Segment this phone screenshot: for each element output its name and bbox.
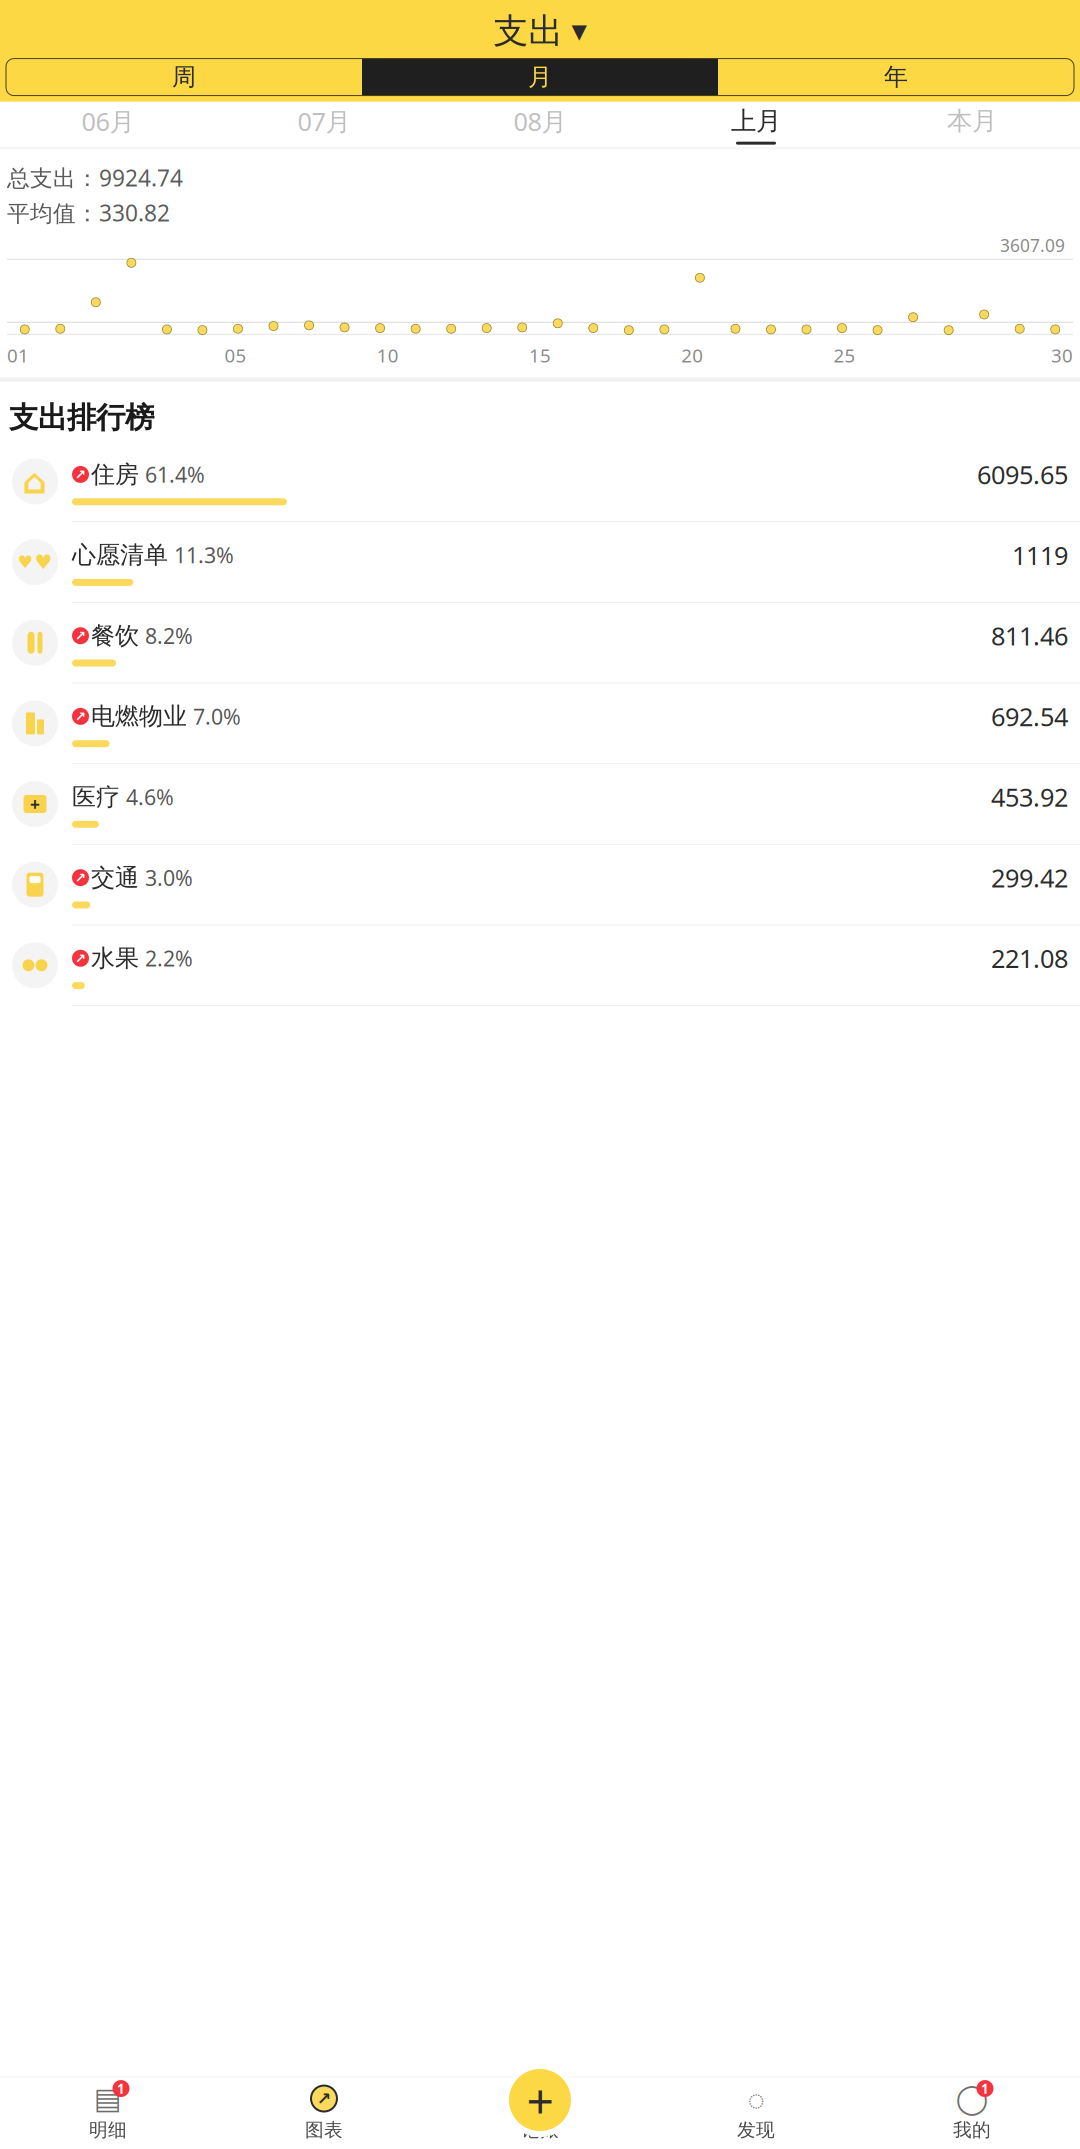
staticText: ↗ xyxy=(75,467,86,482)
button[interactable]: ▤ xyxy=(0,2077,216,2149)
button[interactable]: ↗ xyxy=(0,603,1080,683)
staticText: 周 xyxy=(172,62,196,92)
staticText xyxy=(536,2079,544,2118)
staticText: 08月 xyxy=(513,104,566,138)
button[interactable]: 上月 xyxy=(648,102,864,148)
button[interactable]: ↗ xyxy=(0,683,1080,764)
staticText: + xyxy=(526,2068,553,2132)
button[interactable]: 记账 xyxy=(503,2063,577,2149)
staticText: ▼ xyxy=(571,20,586,43)
staticText: 3.0% xyxy=(139,863,193,892)
staticText: 692.54 xyxy=(991,699,1068,733)
staticText: 月 xyxy=(528,62,552,92)
staticText: + xyxy=(30,792,40,815)
staticText: 2.2% xyxy=(139,944,193,972)
button[interactable]: + xyxy=(0,764,1080,845)
staticText: 支出 xyxy=(493,10,563,53)
button[interactable]: ⌂ xyxy=(0,442,1080,522)
staticText: 1 xyxy=(117,2080,125,2097)
staticText: 221.08 xyxy=(991,941,1068,975)
staticText: 明细 xyxy=(89,2118,127,2141)
staticText: 20 xyxy=(681,343,703,368)
button[interactable]: 年 xyxy=(718,59,1074,96)
staticText: 记账 xyxy=(521,2118,559,2141)
button[interactable]: 06月 xyxy=(0,102,216,148)
staticText: ◌ xyxy=(747,2079,764,2118)
staticText: ↗ xyxy=(75,709,86,724)
staticText: ⌂ xyxy=(22,462,47,501)
staticText: 10 xyxy=(377,343,399,368)
staticText: ↗ xyxy=(75,951,86,966)
button[interactable]: 08月 xyxy=(432,102,648,148)
button[interactable]: ◌ xyxy=(648,2077,864,2149)
staticText: 7.0% xyxy=(187,702,241,730)
staticText: 交通 xyxy=(91,863,139,892)
staticText: 医疗 xyxy=(72,782,120,812)
staticText: 餐饮 xyxy=(91,621,139,650)
staticText: 299.42 xyxy=(991,861,1068,894)
staticText: 8.2% xyxy=(139,622,193,650)
button[interactable]: ↗ xyxy=(0,845,1080,925)
staticText: 3607.09 xyxy=(1000,234,1065,257)
staticText: 06月 xyxy=(81,104,134,138)
staticText: ♥ xyxy=(17,552,33,572)
staticText: 1 xyxy=(981,2080,989,2097)
button[interactable]: 支出 xyxy=(493,0,586,59)
staticText: 07月 xyxy=(297,104,350,138)
button[interactable]: 月 xyxy=(362,59,718,96)
staticText: ◯ xyxy=(955,2082,988,2115)
staticText: 11.3% xyxy=(168,541,234,569)
button[interactable]: ♥ xyxy=(0,522,1080,603)
staticText: ♥ xyxy=(34,551,52,573)
staticText: 发现 xyxy=(737,2118,775,2141)
staticText: 我的 xyxy=(953,2118,991,2141)
staticText: ↗ xyxy=(75,628,86,643)
staticText: 心愿清单 xyxy=(72,540,168,570)
button[interactable]: ↗ xyxy=(216,2077,432,2149)
staticText: 25 xyxy=(834,343,856,368)
staticText: 水果 xyxy=(91,944,139,973)
staticText: 上月 xyxy=(731,105,781,137)
button[interactable]: 本月 xyxy=(864,102,1080,148)
staticText: 811.46 xyxy=(991,619,1068,652)
button[interactable]: 周 xyxy=(6,59,362,96)
staticText: 电燃物业 xyxy=(91,702,187,731)
button[interactable]: ◯ xyxy=(864,2077,1080,2149)
staticText: 61.4% xyxy=(139,460,205,489)
staticText: 453.92 xyxy=(991,780,1068,814)
staticText: 6095.65 xyxy=(977,458,1068,491)
staticText: 总支出：9924.74 xyxy=(7,163,183,193)
staticText: 01 xyxy=(7,343,29,368)
button[interactable]: ↗ xyxy=(0,925,1080,1006)
staticText: ↗ xyxy=(316,2089,331,2108)
staticText: ▤ xyxy=(94,2082,122,2115)
staticText: 05 xyxy=(224,343,246,368)
staticText: 年 xyxy=(884,62,908,92)
staticText: 15 xyxy=(529,343,551,368)
staticText: ↗ xyxy=(75,870,86,885)
staticText: 1119 xyxy=(1012,538,1068,572)
staticText: 图表 xyxy=(305,2118,343,2141)
button[interactable]: 07月 xyxy=(216,102,432,148)
staticText: 平均值：330.82 xyxy=(7,198,170,228)
button[interactable] xyxy=(432,2077,648,2149)
staticText: 住房 xyxy=(91,460,139,489)
staticText: 4.6% xyxy=(120,783,174,811)
staticText: 支出排行榜 xyxy=(9,400,154,436)
staticText: 30 xyxy=(1051,343,1073,368)
staticText: 本月 xyxy=(947,105,997,137)
